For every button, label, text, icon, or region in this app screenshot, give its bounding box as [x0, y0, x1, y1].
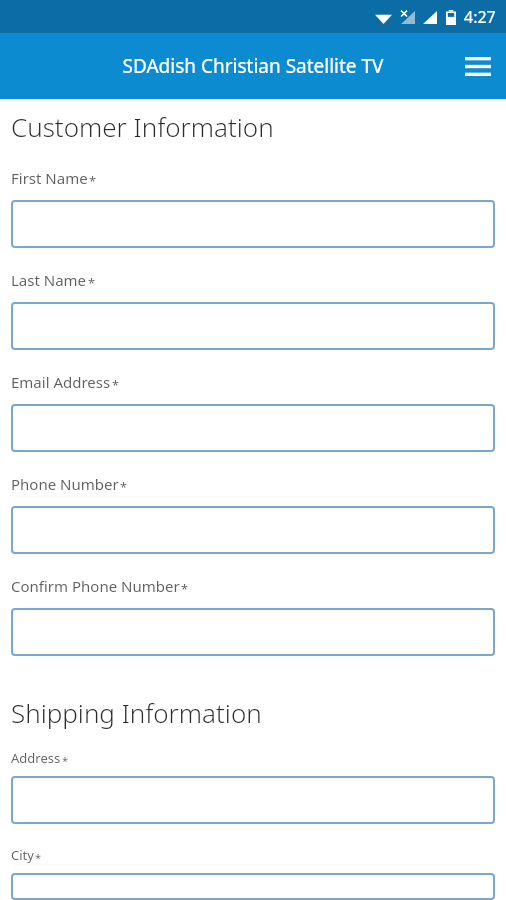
button[interactable]: City: [11, 873, 495, 900]
button[interactable]: Last Name: [11, 302, 495, 350]
staticText: *: [112, 376, 120, 393]
staticText: Address: [11, 749, 61, 767]
staticText: Customer Information: [11, 109, 495, 144]
staticText: *: [120, 478, 128, 495]
staticText: *: [62, 753, 69, 768]
staticText: *: [35, 850, 42, 865]
staticText: Phone Number: [11, 474, 119, 494]
staticText: Shipping Information: [11, 695, 495, 730]
staticText: *: [181, 580, 189, 597]
staticText: Email Address: [11, 372, 111, 392]
staticText: Last Name: [11, 270, 87, 290]
staticText: 4:27: [464, 6, 496, 28]
staticText: City: [11, 846, 34, 864]
button[interactable]: First Name: [11, 200, 495, 248]
staticText: Confirm Phone Number: [11, 576, 180, 596]
button[interactable]: Phone Number: [11, 506, 495, 554]
button[interactable]: Address: [11, 776, 495, 824]
staticText: *: [88, 274, 96, 291]
staticText: First Name: [11, 168, 88, 188]
button[interactable]: Open navigation menu: [450, 38, 506, 94]
staticText: *: [89, 172, 97, 189]
button[interactable]: Confirm Phone Number: [11, 608, 495, 656]
staticText: SDAdish Christian Satellite TV: [56, 53, 450, 79]
button[interactable]: Email Address: [11, 404, 495, 452]
